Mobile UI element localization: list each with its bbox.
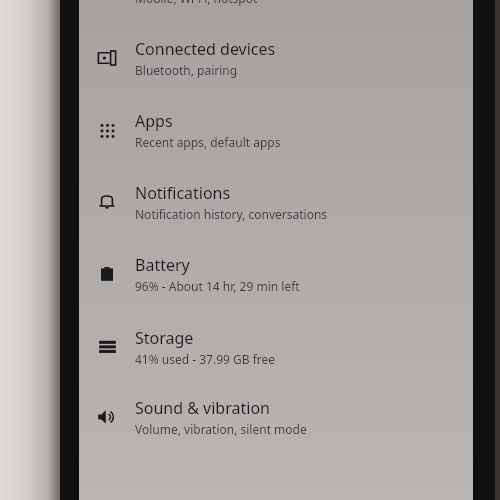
staticText: Storage	[135, 327, 194, 349]
button[interactable]: Sound and vibration	[79, 383, 473, 450]
staticText: 96% - About 14 hr, 29 min left	[135, 278, 300, 294]
button[interactable]: Notifications	[79, 166, 473, 238]
other: Storage	[79, 337, 135, 356]
other: Sound and vibration	[79, 407, 135, 427]
other: Connected devices	[79, 48, 135, 68]
staticText: Bluetooth, pairing	[135, 62, 238, 78]
button[interactable]: Storage	[79, 310, 473, 383]
staticText: Apps	[135, 110, 173, 132]
other: Battery	[79, 264, 135, 284]
other: Notifications	[79, 192, 135, 212]
button[interactable]: Connected devices	[79, 22, 473, 94]
button[interactable]: Battery	[79, 238, 473, 310]
staticText: Mobile, Wi-Fi, hotspot	[135, 0, 258, 6]
staticText: Volume, vibration, silent mode	[135, 421, 307, 437]
staticText: 41% used - 37.99 GB free	[135, 351, 276, 367]
staticText: Recent apps, default apps	[135, 134, 281, 150]
button[interactable]: Network and internet	[79, 0, 473, 22]
staticText: Sound & vibration	[135, 397, 270, 419]
staticText: Notification history, conversations	[135, 206, 328, 222]
other: Apps	[79, 121, 135, 140]
button[interactable]: Apps	[79, 94, 473, 166]
staticText: Connected devices	[135, 38, 276, 60]
staticText: Notifications	[135, 182, 231, 204]
staticText: Battery	[135, 254, 190, 276]
